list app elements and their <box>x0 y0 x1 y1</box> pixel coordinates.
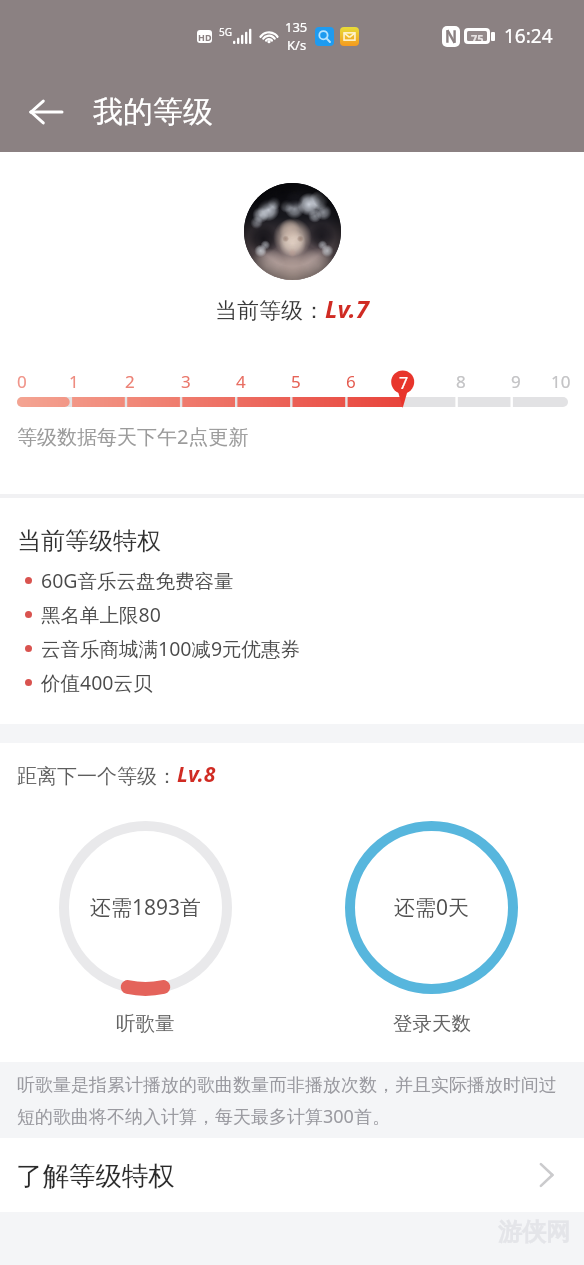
staticText: 游侠网 <box>498 1217 570 1247</box>
staticText: 当前等级： <box>215 297 325 325</box>
staticText: 10 <box>551 370 571 392</box>
button[interactable]: Back <box>20 86 72 138</box>
staticText: 5 <box>291 370 301 392</box>
staticText: 75 <box>471 31 484 41</box>
staticText: 距离下一个等级： <box>17 764 177 789</box>
staticText: Lv.8 <box>177 760 216 789</box>
staticText: 了解等级特权 <box>16 1159 175 1192</box>
staticText: 等级数据每天下午2点更新 <box>17 423 249 450</box>
staticText: 9 <box>511 370 521 392</box>
staticText: 135 <box>285 18 308 36</box>
button[interactable]: 了解等级特权 <box>0 1138 584 1212</box>
staticText: K/s <box>287 36 307 54</box>
staticText: 还需1893首 <box>90 893 202 922</box>
staticText: 16:24 <box>504 23 553 49</box>
staticText: 8 <box>456 370 466 392</box>
staticText: HD <box>198 31 212 43</box>
staticText: 云音乐商城满100减9元优惠券 <box>41 635 301 662</box>
staticText: 7 <box>399 372 409 394</box>
staticText: 当前等级特权 <box>17 526 161 556</box>
staticText: 2 <box>125 370 135 392</box>
staticText: 3 <box>181 370 191 392</box>
staticText: 我的等级 <box>93 93 213 131</box>
staticText: 5G <box>219 25 232 39</box>
staticText: 1 <box>69 370 79 392</box>
staticText: 6 <box>346 370 356 392</box>
staticText: 听歌量 <box>116 1011 175 1036</box>
staticText: 黑名单上限80 <box>41 601 161 628</box>
staticText: Lv.7 <box>325 292 369 325</box>
staticText: 登录天数 <box>393 1011 471 1036</box>
staticText: 价值400云贝 <box>41 669 153 696</box>
staticText: 听歌量是指累计播放的歌曲数量而非播放次数，并且实际播放时间过短的歌曲将不纳入计算… <box>17 1074 566 1129</box>
button[interactable]: Avatar <box>244 183 341 280</box>
staticText: 60G音乐云盘免费容量 <box>41 567 234 594</box>
staticText: 还需0天 <box>394 893 470 922</box>
staticText: 0 <box>17 370 27 392</box>
staticText: 7 <box>401 370 411 392</box>
staticText: 4 <box>236 370 246 392</box>
